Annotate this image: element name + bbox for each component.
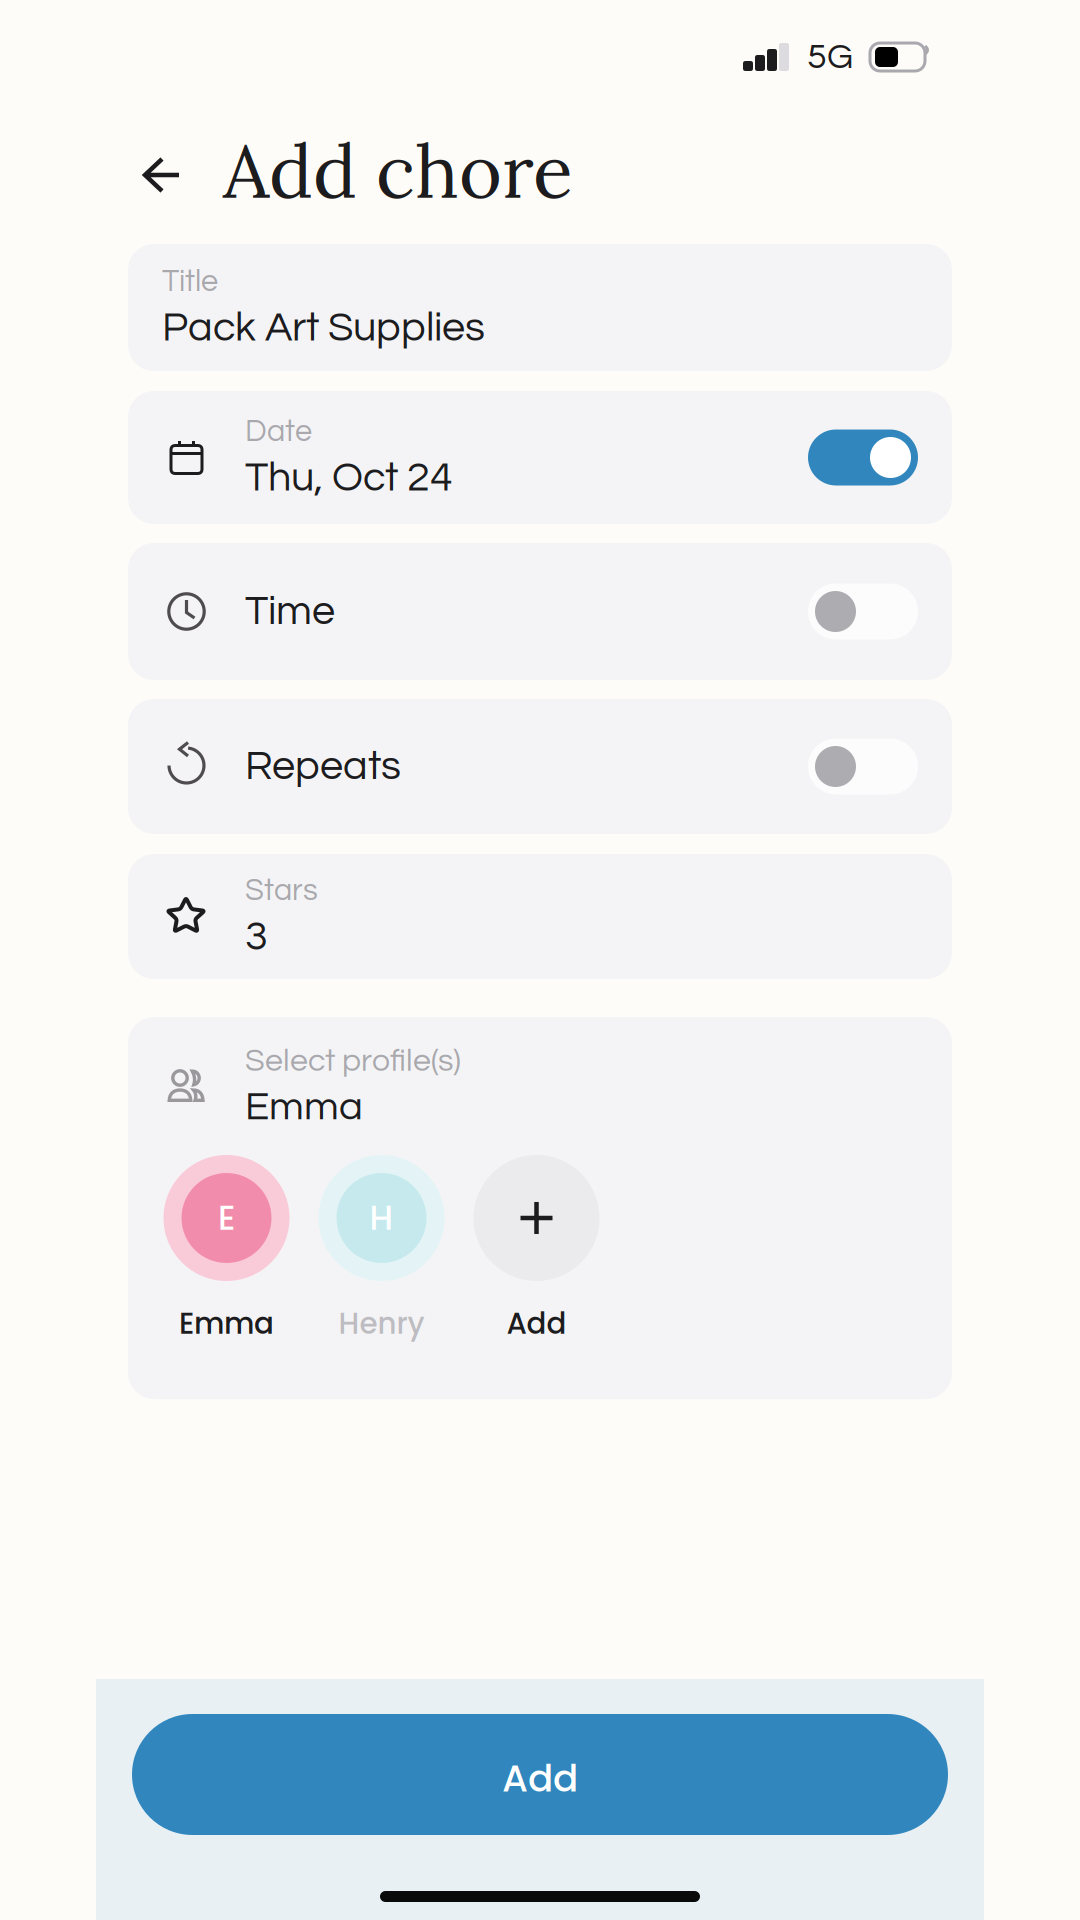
- button[interactable]: Time: [128, 543, 952, 680]
- staticText: E: [218, 1195, 235, 1241]
- staticText: Add: [502, 1752, 578, 1805]
- staticText: Select profile(s): [245, 1044, 461, 1077]
- button[interactable]: Add: [459, 1155, 614, 1344]
- staticText: Emma: [179, 1303, 274, 1344]
- button[interactable]: Title: [128, 244, 952, 371]
- button[interactable]: Repeats: [128, 699, 952, 834]
- button[interactable]: H: [304, 1155, 459, 1344]
- staticText: Stars: [245, 875, 318, 906]
- button[interactable]: Add: [132, 1714, 948, 1835]
- staticText: 3: [245, 915, 268, 958]
- staticText: Thu, Oct 24: [245, 456, 453, 499]
- staticText: Time: [245, 590, 335, 633]
- staticText: Date: [245, 416, 312, 447]
- button[interactable]: Date: [128, 391, 952, 524]
- staticText: Add chore: [223, 124, 573, 218]
- staticText: H: [369, 1195, 393, 1241]
- button[interactable]: Stars: [128, 854, 952, 979]
- staticText: Title: [162, 266, 218, 297]
- staticText: Add: [506, 1303, 566, 1344]
- button[interactable]: Back: [137, 133, 183, 209]
- staticText: Henry: [338, 1303, 424, 1344]
- staticText: Emma: [245, 1086, 363, 1128]
- staticText: 5G: [807, 38, 853, 76]
- button[interactable]: E: [149, 1155, 304, 1344]
- staticText: Repeats: [245, 745, 401, 788]
- staticText: Pack Art Supplies: [162, 306, 485, 349]
